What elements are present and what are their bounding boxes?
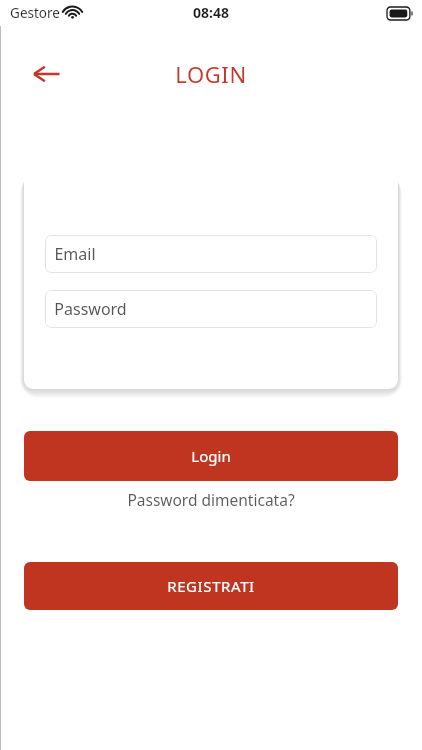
staticText: Password <box>54 298 127 320</box>
button[interactable]: Back <box>22 55 70 93</box>
staticText: Login <box>191 446 231 466</box>
staticText: 08:48 <box>193 3 229 22</box>
staticText: LOGIN <box>175 59 247 89</box>
button[interactable]: Email <box>45 235 377 273</box>
button[interactable]: REGISTRATI <box>24 562 398 610</box>
button[interactable]: Password dimenticata? <box>0 489 422 510</box>
staticText: Gestore <box>10 4 60 22</box>
button[interactable]: Password <box>45 290 377 328</box>
button[interactable]: Login <box>24 431 398 481</box>
staticText: REGISTRATI <box>167 576 255 596</box>
staticText: Email <box>54 243 96 265</box>
staticText: Password dimenticata? <box>127 489 295 510</box>
